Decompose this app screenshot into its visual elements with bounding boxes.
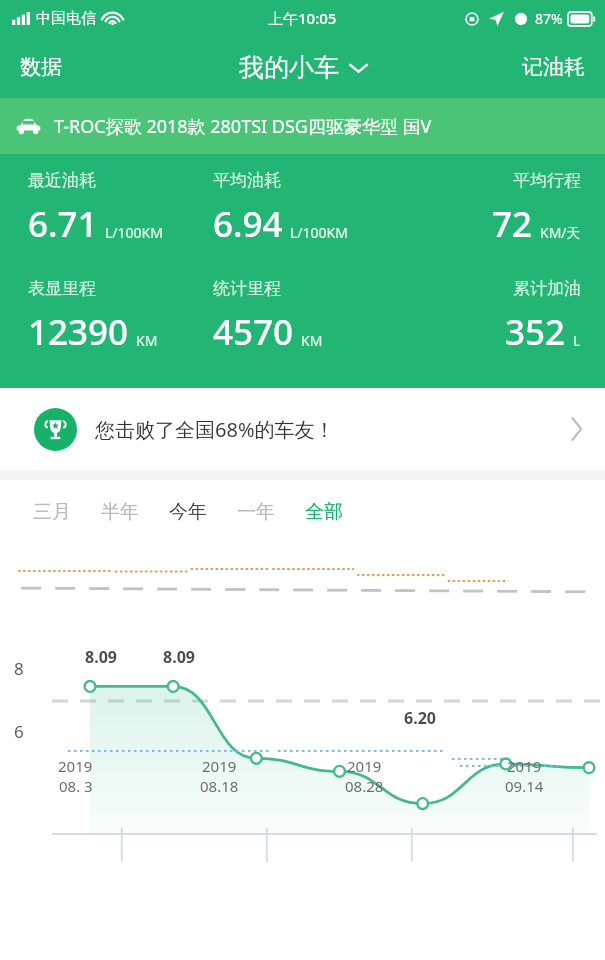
staticText: 最近油耗 — [28, 170, 96, 191]
staticText: 6.94 — [213, 200, 283, 248]
button[interactable]: 您击败了全国68%的车友！ — [0, 388, 605, 470]
button[interactable]: 半年 — [86, 489, 154, 535]
button[interactable]: 数据 — [0, 41, 82, 93]
staticText: 三月 — [33, 500, 71, 524]
staticText: 08.18 — [200, 776, 239, 796]
staticText: T-ROC探歌 2018款 280TSI DSG四驱豪华型 国V — [54, 114, 432, 139]
staticText: 8.09 — [85, 646, 117, 668]
staticText: 09.14 — [505, 776, 544, 796]
staticText: 记油耗 — [522, 54, 585, 80]
staticText: 2019 — [507, 756, 542, 776]
staticText: 08.28 — [345, 776, 384, 796]
staticText: 87% — [535, 9, 563, 28]
staticText: 平均油耗 — [213, 170, 281, 191]
staticText: 2019 — [202, 756, 237, 776]
staticText: 表显里程 — [28, 278, 96, 299]
staticText: 8.09 — [163, 646, 195, 668]
button[interactable]: 全部 — [290, 489, 358, 535]
staticText: KM — [301, 331, 323, 350]
staticText: L/100KM — [290, 223, 348, 242]
staticText: L/100KM — [105, 223, 163, 242]
staticText: 2019 — [347, 756, 382, 776]
staticText: 您击败了全国68%的车友！ — [95, 416, 335, 443]
staticText: 4570 — [213, 308, 294, 356]
staticText: 平均行程 — [513, 170, 581, 191]
button[interactable]: 我的小车 — [225, 43, 381, 92]
staticText: 352 — [505, 308, 566, 356]
other: 查看详情 — [570, 418, 583, 440]
staticText: 统计里程 — [213, 278, 281, 299]
staticText: 今年 — [169, 500, 207, 524]
button[interactable]: 三月 — [18, 489, 86, 535]
staticText: 8 — [14, 657, 24, 680]
button[interactable]: T-ROC探歌 2018款 280TSI DSG四驱豪华型 国V — [0, 98, 605, 154]
button[interactable]: 记油耗 — [502, 41, 605, 93]
staticText: KM — [136, 331, 158, 350]
staticText: 12390 — [28, 308, 129, 356]
staticText: 数据 — [20, 54, 62, 80]
staticText: 72 — [492, 200, 533, 248]
staticText: L — [573, 331, 581, 350]
staticText: 6.71 — [28, 200, 98, 248]
button[interactable]: 今年 — [154, 489, 222, 535]
staticText: 6.20 — [404, 707, 436, 729]
staticText: 2019 — [58, 756, 93, 776]
staticText: 全部 — [305, 500, 343, 524]
staticText: 半年 — [101, 500, 139, 524]
staticText: 我的小车 — [239, 52, 339, 83]
staticText: 一年 — [237, 500, 275, 524]
staticText: 6 — [14, 720, 24, 743]
staticText: 上午10:05 — [268, 8, 337, 28]
button[interactable]: 一年 — [222, 489, 290, 535]
staticText: KM/天 — [540, 223, 581, 242]
staticText: 累计加油 — [513, 278, 581, 299]
staticText: 中国电信 — [36, 9, 96, 28]
staticText: 08. 3 — [59, 776, 93, 796]
